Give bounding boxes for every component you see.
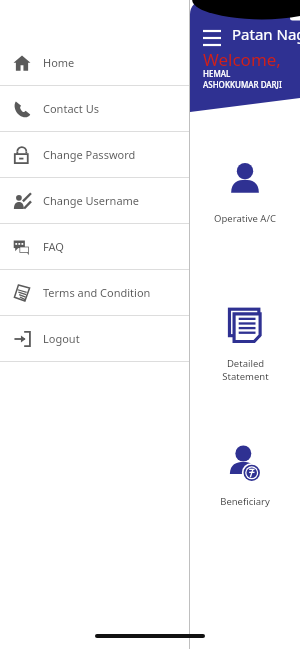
button[interactable]: Detailed Statement bbox=[190, 305, 300, 383]
button[interactable]: Beneficiary bbox=[190, 443, 300, 508]
button[interactable]: Operative A/C bbox=[190, 160, 300, 225]
staticText: HEMAL ASHOKKUMAR DARJI bbox=[203, 68, 282, 90]
staticText: Detailed Statement bbox=[222, 357, 269, 383]
staticText: Change Password bbox=[43, 147, 136, 162]
button[interactable]: Change Password bbox=[0, 132, 190, 177]
staticText: Welcome, bbox=[203, 48, 281, 71]
button[interactable]: Open navigation menu bbox=[198, 22, 226, 50]
button[interactable]: Home bbox=[0, 40, 190, 85]
staticText: Terms and Condition bbox=[43, 285, 151, 300]
staticText: Change Username bbox=[43, 193, 140, 208]
button[interactable]: FAQ bbox=[0, 224, 190, 269]
staticText: Operative A/C bbox=[214, 212, 276, 225]
button[interactable]: Change Username bbox=[0, 178, 190, 223]
staticText: Patan Nag bbox=[232, 24, 300, 44]
button[interactable]: Terms and Condition bbox=[0, 270, 190, 315]
button[interactable]: Contact Us bbox=[0, 86, 190, 131]
staticText: FAQ bbox=[43, 239, 64, 254]
staticText: Beneficiary bbox=[220, 495, 270, 508]
button[interactable]: Logout bbox=[0, 316, 190, 361]
staticText: Home bbox=[43, 55, 75, 70]
staticText: Contact Us bbox=[43, 101, 99, 116]
staticText: Logout bbox=[43, 331, 80, 346]
